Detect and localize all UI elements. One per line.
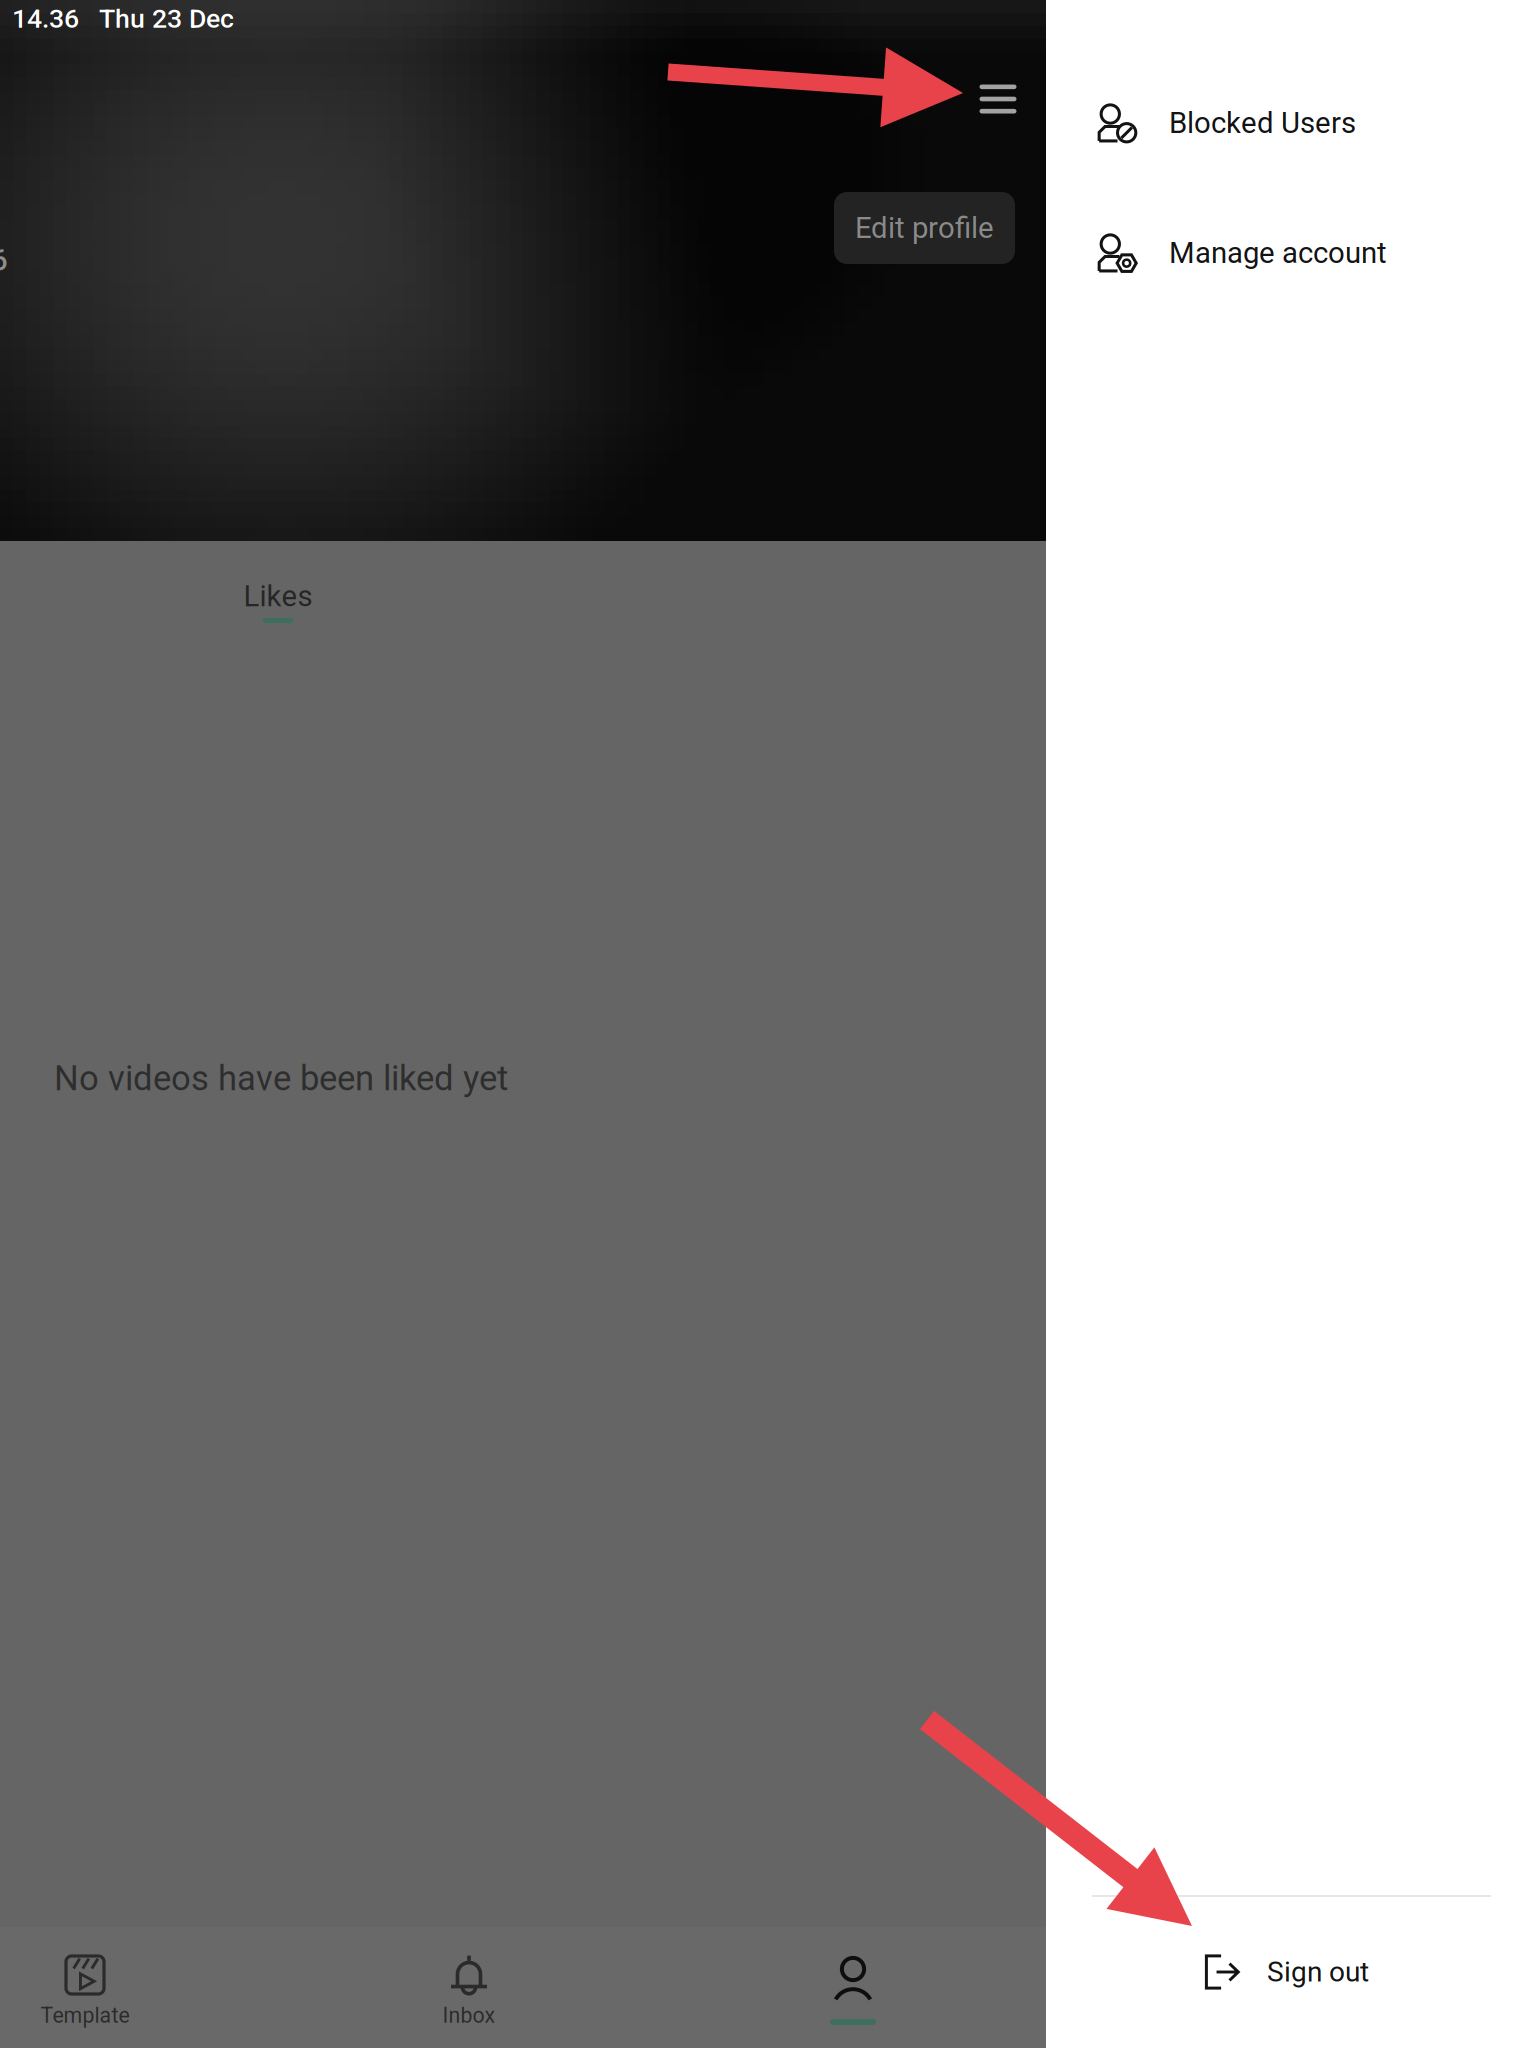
staticText: Edit profile [855, 211, 994, 245]
staticText: 14.36 Thu 23 Dec [12, 3, 234, 34]
button[interactable]: Manage account [1046, 205, 1536, 301]
button[interactable]: Template [0, 1927, 200, 2047]
staticText: 6 [0, 243, 8, 277]
button[interactable]: Sign out [1046, 1924, 1536, 2020]
staticText: Likes [243, 579, 312, 613]
button[interactable]: Likes [208, 576, 348, 648]
button[interactable]: Menu [958, 59, 1038, 139]
button[interactable]: Inbox [354, 1927, 584, 2047]
staticText: Template [40, 2003, 129, 2028]
staticText: Blocked Users [1169, 106, 1356, 140]
staticText: No videos have been liked yet [54, 1058, 508, 1099]
staticText: Manage account [1169, 236, 1387, 270]
button[interactable]: Profile [738, 1927, 968, 2047]
staticText: Sign out [1267, 1956, 1369, 1988]
button[interactable]: Edit profile [834, 192, 1015, 264]
button[interactable]: Blocked Users [1046, 75, 1536, 171]
staticText: Inbox [442, 2003, 495, 2028]
